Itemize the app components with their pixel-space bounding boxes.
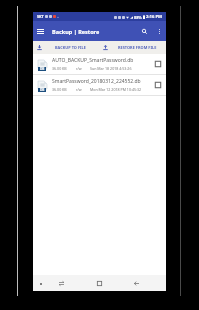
staticText: DB: [40, 88, 45, 92]
button[interactable]: Search: [138, 25, 150, 37]
button[interactable]: Open navigation menu: [34, 25, 47, 38]
staticText: SKT: [37, 14, 44, 19]
staticText: r/w: [76, 87, 82, 92]
staticText: 36.00 KB: [52, 66, 67, 71]
button[interactable]: Select file: [155, 61, 161, 67]
staticText: 2:16 PM: [146, 14, 163, 20]
staticText: BACKUP TO FILE: [55, 45, 86, 50]
staticText: RESTORE FROM FILE: [118, 45, 157, 50]
staticText: 88%: [134, 15, 142, 20]
button[interactable]: Select file: [155, 82, 161, 88]
staticText: Backup | Restore: [52, 28, 100, 35]
staticText: DB: [40, 67, 45, 71]
button[interactable]: Home: [94, 278, 105, 289]
button[interactable]: RESTORE FROM FILE: [99, 41, 166, 54]
staticText: AUTO_BACKUP_SmartPassword.db: [52, 57, 134, 64]
button[interactable]: More options: [153, 25, 165, 37]
button[interactable]: DB: [33, 75, 166, 96]
staticText: SmartPassword_20180312_224552.db: [52, 78, 141, 85]
staticText: 36.00 KB: [52, 87, 67, 92]
staticText: Mon Mar 12 2018 PM 10:45:32: [90, 87, 142, 92]
staticText: Sun Mar 18 2018 4:53:26: [90, 66, 132, 71]
button[interactable]: Recent apps: [56, 278, 67, 289]
button[interactable]: Back: [131, 278, 142, 289]
staticText: r/w: [76, 66, 82, 71]
button[interactable]: Assistant: [36, 279, 45, 288]
button[interactable]: BACKUP TO FILE: [33, 41, 99, 54]
button[interactable]: DB: [33, 54, 166, 75]
